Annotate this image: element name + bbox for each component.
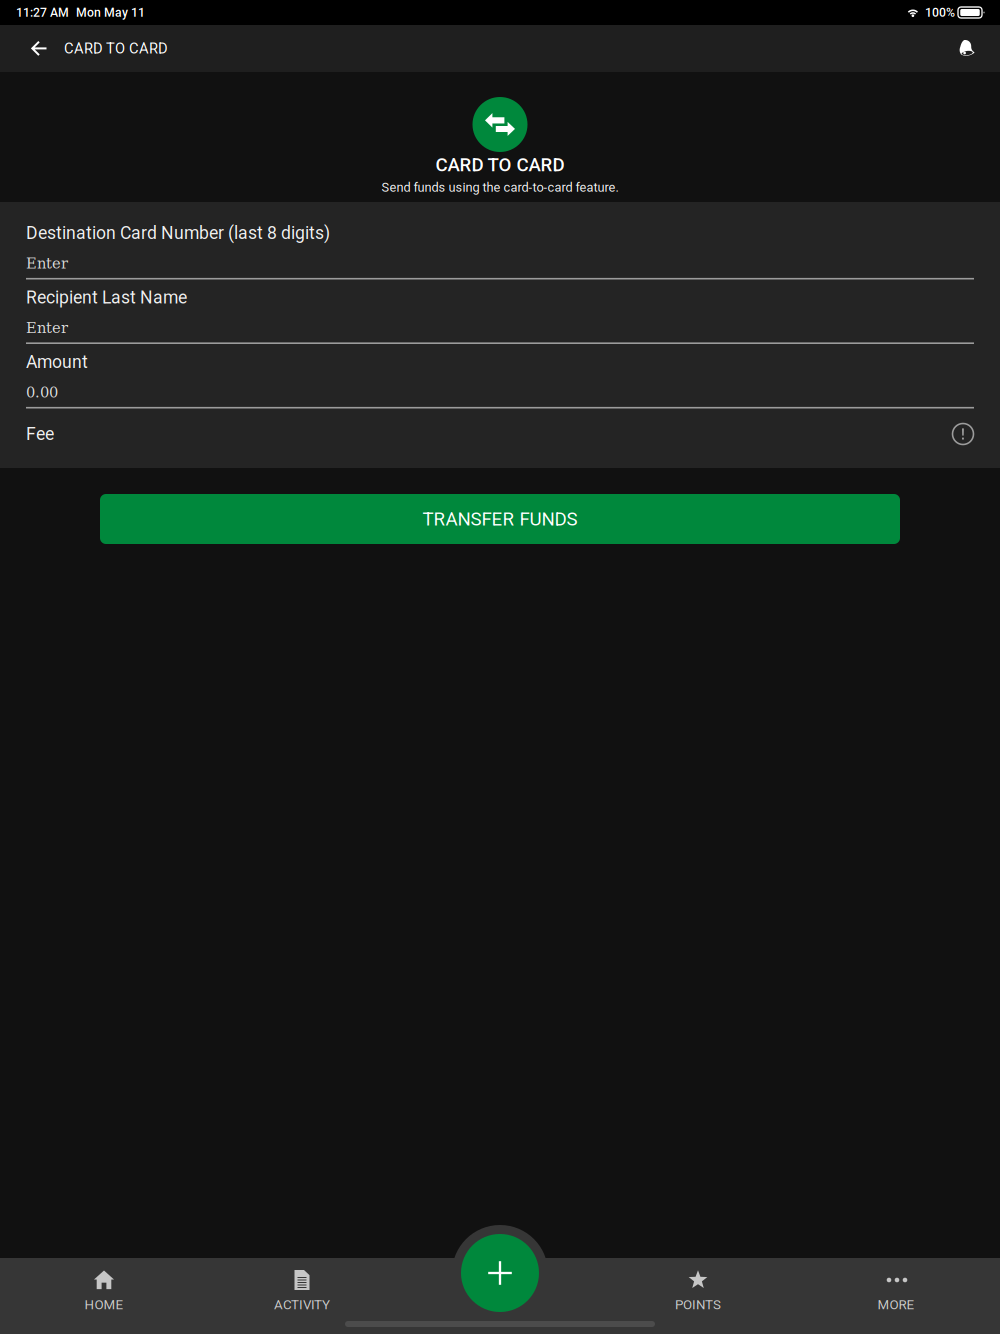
staticText: TRANSFER FUNDS bbox=[422, 508, 577, 530]
staticText: Send funds using the card-to-card featur… bbox=[381, 180, 618, 195]
staticText: 11:27 AM bbox=[16, 5, 69, 20]
staticText: Amount bbox=[26, 352, 88, 372]
button[interactable]: Add bbox=[452, 1225, 548, 1321]
button[interactable]: TRANSFER FUNDS bbox=[100, 494, 900, 544]
button[interactable]: MORE bbox=[797, 1258, 995, 1334]
staticText: Enter bbox=[26, 255, 68, 272]
staticText: Destination Card Number (last 8 digits) bbox=[26, 223, 330, 243]
staticText: CARD TO CARD bbox=[64, 40, 168, 57]
staticText: HOME bbox=[84, 1297, 123, 1313]
staticText: Mon May 11 bbox=[76, 5, 145, 20]
button[interactable]: Back bbox=[0, 25, 55, 72]
staticText: POINTS bbox=[675, 1297, 721, 1313]
button[interactable]: POINTS bbox=[599, 1258, 797, 1334]
staticText: Fee bbox=[26, 424, 54, 444]
staticText: 0.00 bbox=[26, 384, 58, 401]
button[interactable]: HOME bbox=[5, 1258, 203, 1334]
button[interactable]: ACTIVITY bbox=[203, 1258, 401, 1334]
staticText: 100% bbox=[925, 5, 955, 20]
staticText: MORE bbox=[877, 1297, 914, 1313]
staticText: ACTIVITY bbox=[274, 1297, 330, 1313]
button[interactable]: Notifications bbox=[934, 25, 1000, 72]
staticText: Recipient Last Name bbox=[26, 287, 187, 308]
staticText: CARD TO CARD bbox=[435, 154, 564, 176]
staticText: Enter bbox=[26, 319, 68, 336]
